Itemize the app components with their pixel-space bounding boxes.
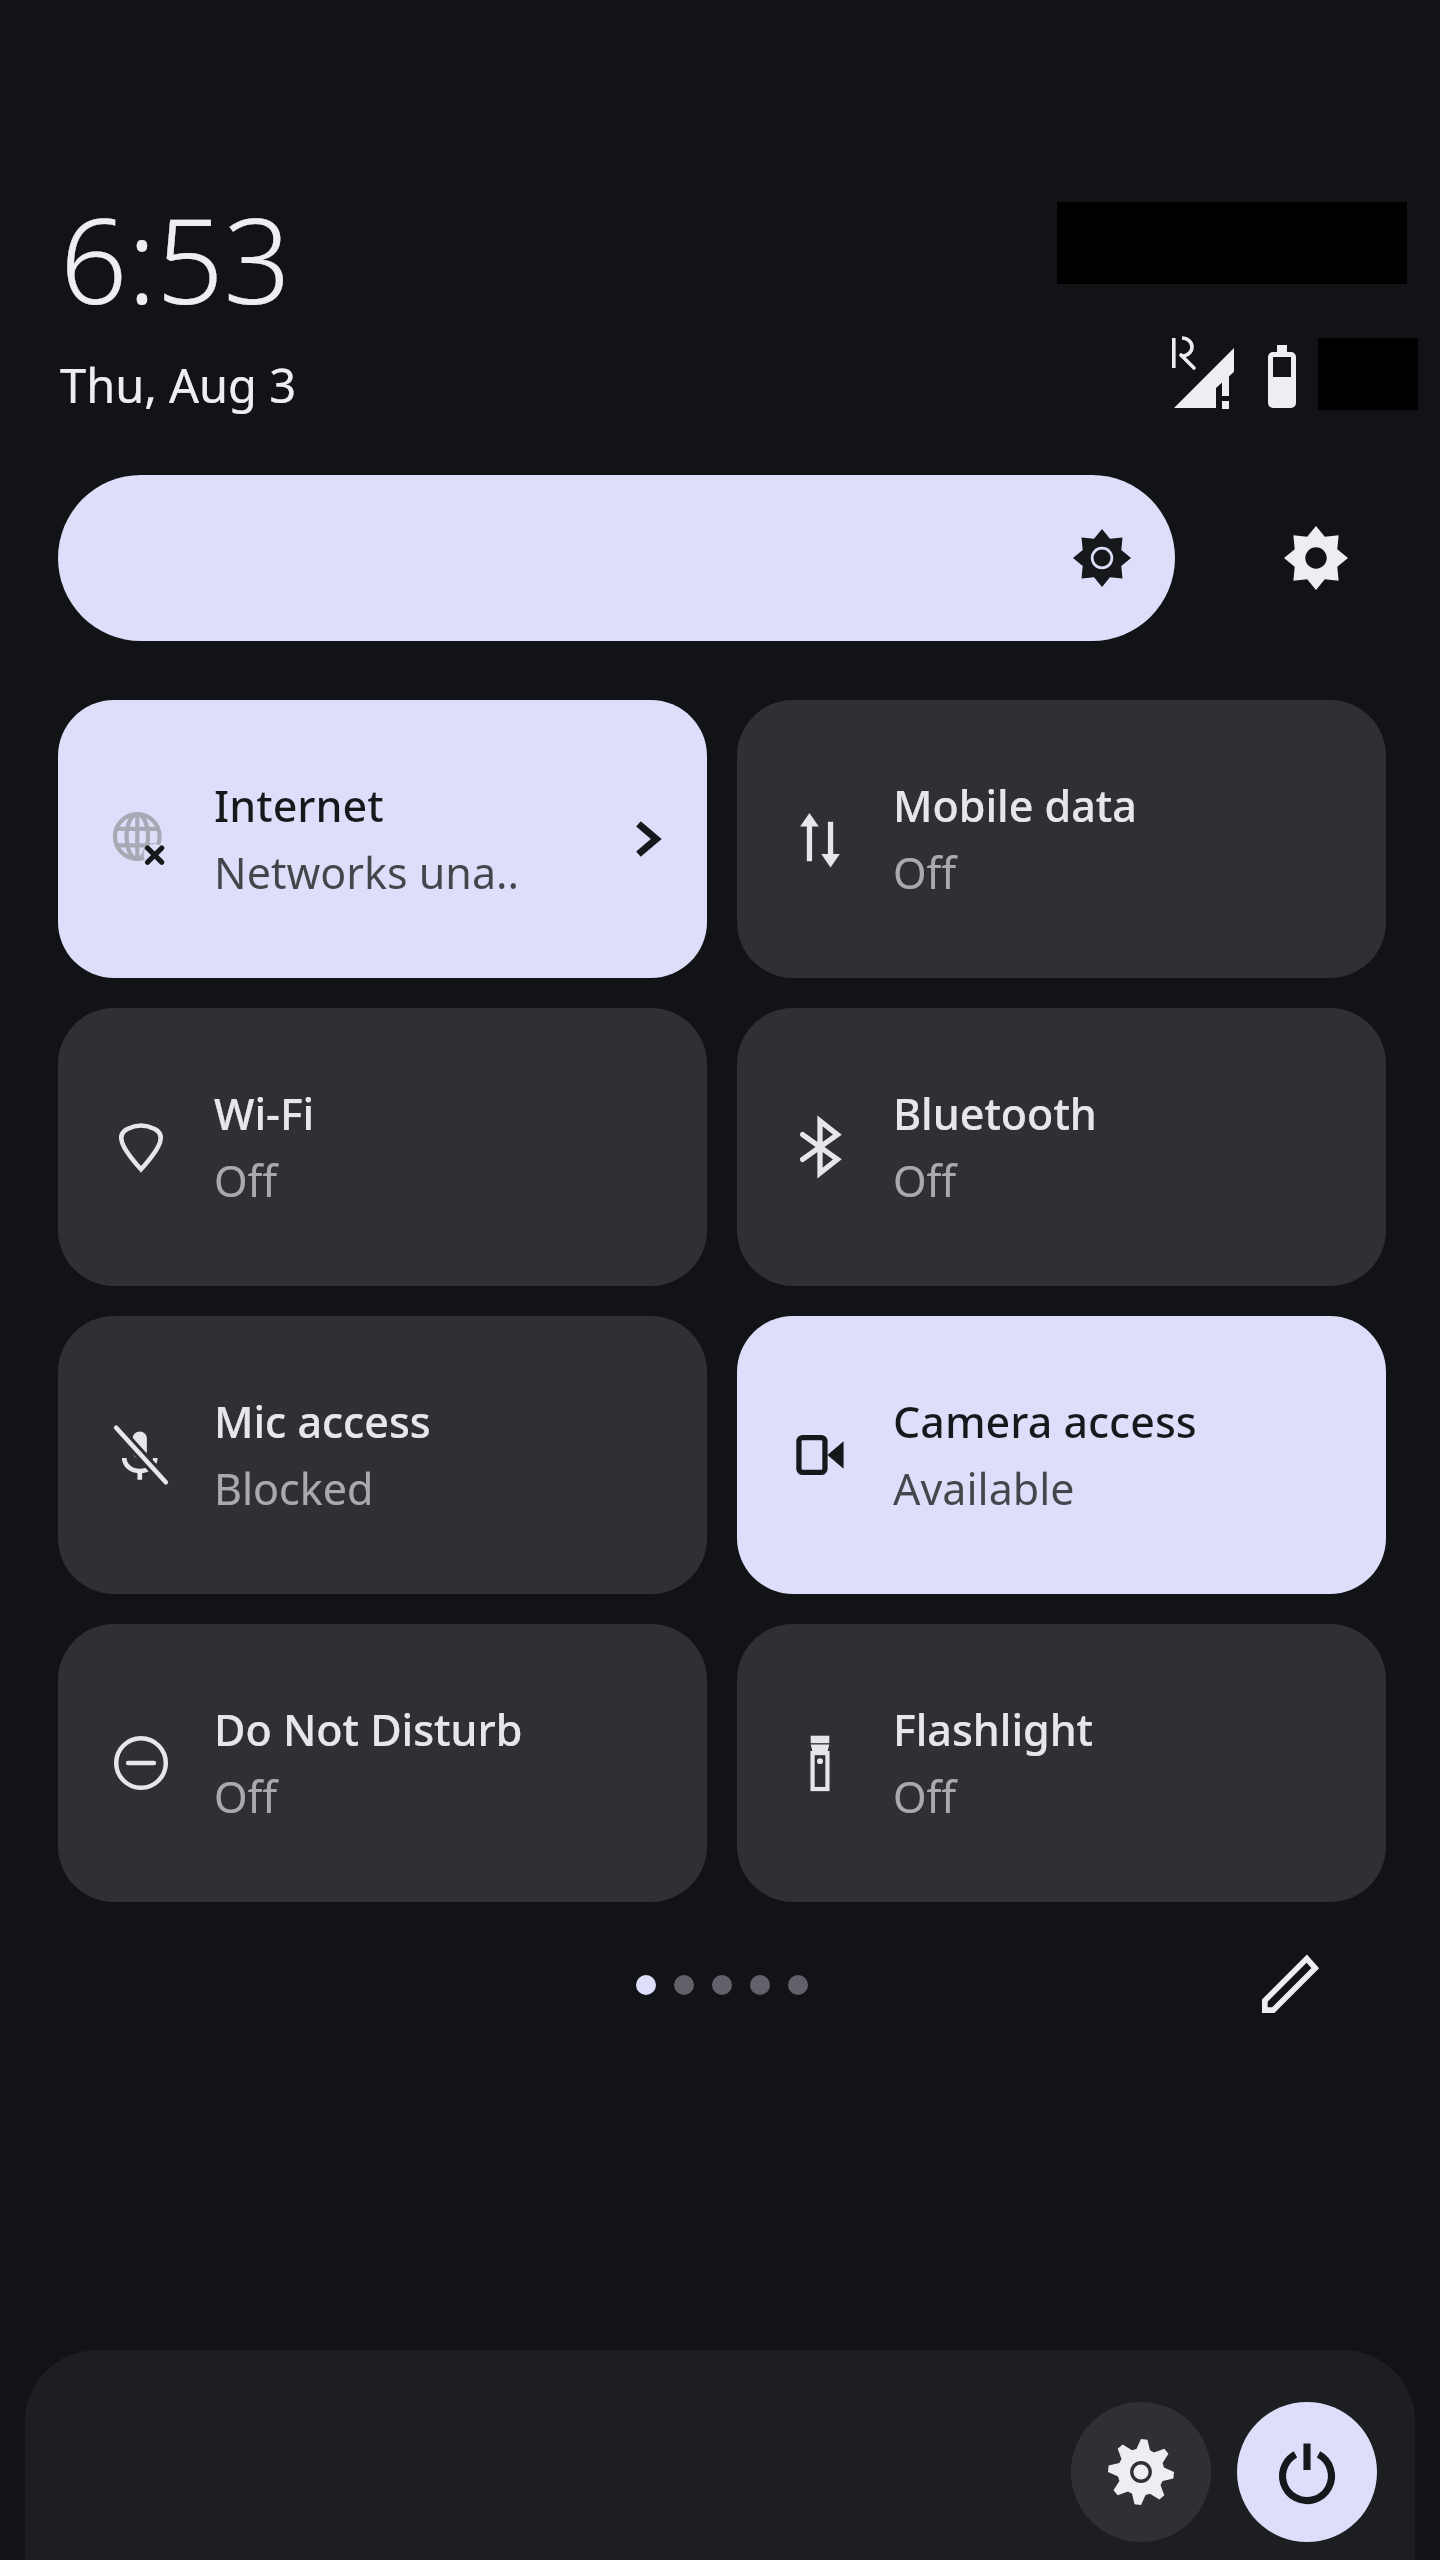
staticText: Mobile data bbox=[893, 776, 1137, 835]
button[interactable]: Bluetooth bbox=[737, 1008, 1386, 1286]
staticText: Blocked bbox=[214, 1459, 374, 1518]
staticText: Off bbox=[214, 1767, 278, 1826]
staticText: Off bbox=[893, 1151, 957, 1210]
staticText: Internet bbox=[214, 776, 384, 835]
staticText: Bluetooth bbox=[893, 1084, 1097, 1143]
staticText: Networks una.. bbox=[214, 843, 520, 902]
button[interactable]: Edit tiles bbox=[1235, 1930, 1345, 2040]
staticText: Off bbox=[893, 843, 957, 902]
staticText: Flashlight bbox=[893, 1700, 1094, 1759]
staticText: Camera access bbox=[893, 1392, 1197, 1451]
button[interactable]: Wi-Fi bbox=[58, 1008, 707, 1286]
button[interactable]: Flashlight bbox=[737, 1624, 1386, 1902]
staticText: Do Not Disturb bbox=[214, 1700, 523, 1759]
button[interactable]: Settings bbox=[1071, 2402, 1211, 2542]
button[interactable]: Internet bbox=[58, 700, 707, 978]
staticText: Mic access bbox=[214, 1392, 431, 1451]
button[interactable]: Brightness bbox=[58, 475, 1175, 641]
button[interactable]: Mic access bbox=[58, 1316, 707, 1594]
staticText: Off bbox=[214, 1151, 278, 1210]
staticText: 6:53 bbox=[60, 178, 291, 339]
button[interactable]: Do Not Disturb bbox=[58, 1624, 707, 1902]
button[interactable]: Camera access bbox=[737, 1316, 1386, 1594]
staticText: Available bbox=[893, 1459, 1075, 1518]
button[interactable]: Mobile data bbox=[737, 700, 1386, 978]
button[interactable]: Power bbox=[1237, 2402, 1377, 2542]
button[interactable]: Auto brightness bbox=[1258, 500, 1374, 616]
staticText: Wi-Fi bbox=[214, 1084, 315, 1143]
staticText: Off bbox=[893, 1767, 957, 1826]
staticText: Thu, Aug 3 bbox=[60, 353, 297, 417]
